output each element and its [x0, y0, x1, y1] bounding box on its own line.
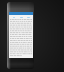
button[interactable] [18, 16, 25, 18]
button[interactable] [10, 16, 18, 18]
button[interactable] [25, 16, 32, 18]
